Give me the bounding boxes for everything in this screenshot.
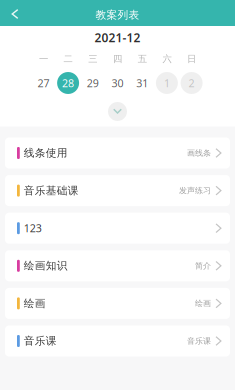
- button[interactable]: 音乐课: [5, 325, 230, 356]
- button[interactable]: 2: [179, 71, 204, 95]
- button[interactable]: 31: [130, 71, 155, 95]
- staticText: 29: [87, 76, 99, 90]
- button[interactable]: 线条使用: [5, 137, 230, 168]
- button[interactable]: 1: [155, 71, 179, 95]
- staticText: 四: [113, 53, 122, 65]
- staticText: 音乐课: [187, 336, 211, 346]
- staticText: 绘画: [24, 297, 46, 310]
- button[interactable]: 绘画知识: [5, 250, 230, 281]
- staticText: 画线条: [187, 148, 211, 158]
- button[interactable]: 30: [105, 71, 130, 95]
- button[interactable]: Back: [0, 0, 30, 27]
- staticText: 六: [162, 53, 171, 65]
- button[interactable]: 28: [56, 71, 80, 95]
- staticText: 日: [187, 53, 196, 65]
- staticText: 五: [138, 53, 147, 65]
- staticText: 三: [88, 53, 97, 65]
- staticText: 音乐课: [24, 334, 57, 347]
- staticText: 线条使用: [24, 146, 68, 159]
- staticText: 音乐基础课: [24, 184, 79, 197]
- staticText: 二: [64, 53, 73, 65]
- staticText: 1: [164, 76, 170, 90]
- button[interactable]: 绘画: [5, 288, 230, 319]
- staticText: 123: [24, 221, 42, 235]
- staticText: 发声练习: [179, 186, 211, 195]
- staticText: 2: [189, 76, 195, 90]
- staticText: 绘画知识: [24, 259, 68, 272]
- button[interactable]: 27: [31, 71, 56, 95]
- button[interactable]: Expand calendar: [107, 102, 128, 121]
- button[interactable]: 音乐基础课: [5, 175, 230, 206]
- staticText: 30: [111, 76, 123, 90]
- staticText: 27: [37, 76, 49, 90]
- staticText: 31: [136, 76, 148, 90]
- staticText: 28: [62, 76, 74, 90]
- staticText: 简介: [195, 261, 211, 271]
- staticText: 2021-12: [94, 29, 140, 45]
- staticText: 一: [39, 53, 48, 65]
- staticText: 绘画: [195, 298, 211, 308]
- button[interactable]: 29: [80, 71, 105, 95]
- staticText: 教案列表: [95, 8, 139, 21]
- button[interactable]: 123: [5, 213, 230, 244]
